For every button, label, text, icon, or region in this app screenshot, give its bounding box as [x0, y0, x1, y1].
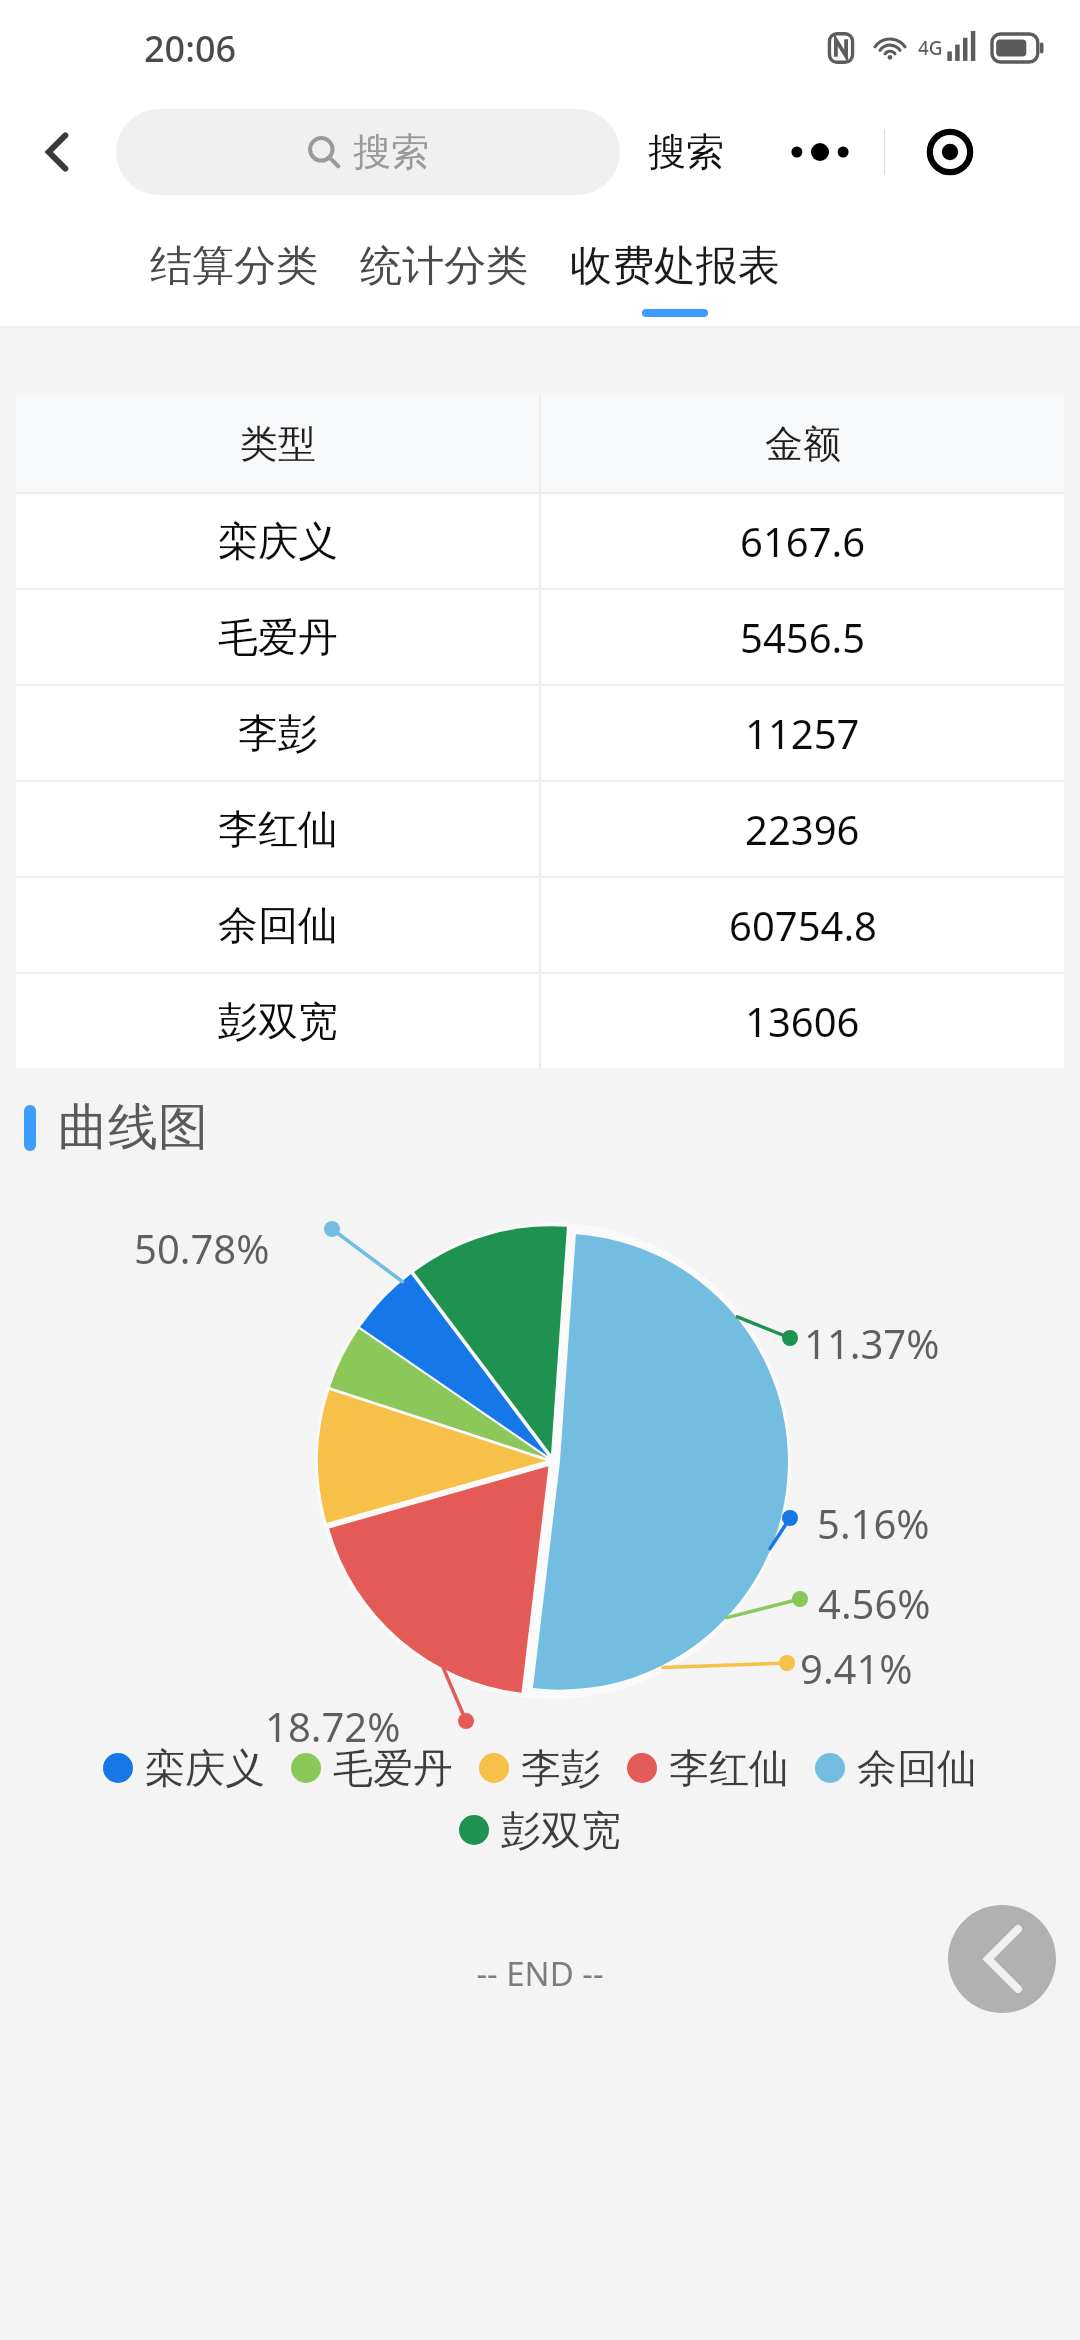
staticText: 18.72% [265, 1699, 401, 1753]
staticText: 4.56% [818, 1576, 931, 1630]
staticText: 13606 [745, 994, 860, 1048]
staticText: 9.41% [800, 1641, 913, 1695]
button[interactable]: 彭双宽 [459, 1805, 621, 1855]
staticText: 11.37% [804, 1316, 940, 1370]
staticText: 彭双宽 [218, 996, 338, 1046]
button[interactable]: 栾庆义 [16, 494, 1064, 588]
staticText: 毛爱丹 [333, 1743, 453, 1793]
staticText: -- END -- [0, 1951, 1080, 1996]
staticText: 22396 [745, 802, 860, 856]
staticText: 6167.6 [740, 514, 866, 568]
staticText: 11257 [745, 706, 860, 760]
staticText: 搜索 [648, 128, 724, 176]
staticText: 60754.8 [729, 898, 877, 952]
button[interactable]: 搜索 [648, 96, 724, 208]
staticText: 彭双宽 [501, 1805, 621, 1855]
staticText: 李彭 [521, 1743, 601, 1793]
button[interactable]: Back [948, 1905, 1056, 2013]
button[interactable]: 余回仙 [16, 878, 1064, 972]
button[interactable]: 余回仙 [815, 1743, 977, 1793]
staticText: 4G [918, 35, 943, 61]
staticText: 搜索 [353, 128, 429, 176]
staticText: 金额 [765, 420, 841, 468]
button[interactable]: Back [0, 96, 116, 208]
button[interactable]: 毛爱丹 [291, 1743, 453, 1793]
staticText: 5.16% [817, 1496, 930, 1550]
staticText: 结算分类 [150, 240, 318, 293]
staticText: 5456.5 [740, 610, 866, 664]
staticText: 李红仙 [218, 804, 338, 854]
button[interactable]: 李彭 [16, 686, 1064, 780]
staticText: 李红仙 [669, 1743, 789, 1793]
button[interactable]: 搜索 [116, 109, 620, 195]
staticText: 李彭 [238, 708, 318, 758]
staticText: 20:06 [144, 24, 237, 73]
staticText: 统计分类 [360, 240, 528, 293]
staticText: 曲线图 [58, 1096, 208, 1159]
button[interactable]: 统计分类 [360, 208, 528, 326]
staticText: 毛爱丹 [218, 612, 338, 662]
button[interactable]: 彭双宽 [16, 974, 1064, 1068]
staticText: 栾庆义 [145, 1743, 265, 1793]
button[interactable]: More options [756, 114, 1014, 190]
button[interactable]: 收费处报表 [570, 208, 780, 326]
staticText: 栾庆义 [218, 516, 338, 566]
staticText: 余回仙 [218, 900, 338, 950]
button[interactable]: 李红仙 [16, 782, 1064, 876]
staticText: 类型 [240, 420, 316, 468]
staticText: 收费处报表 [570, 240, 780, 293]
button[interactable]: 李红仙 [627, 1743, 789, 1793]
button[interactable]: 李彭 [479, 1743, 601, 1793]
staticText: 50.78% [134, 1221, 270, 1275]
staticText: 余回仙 [857, 1743, 977, 1793]
button[interactable]: 毛爱丹 [16, 590, 1064, 684]
button[interactable]: 栾庆义 [103, 1743, 265, 1793]
button[interactable]: 结算分类 [150, 208, 318, 326]
